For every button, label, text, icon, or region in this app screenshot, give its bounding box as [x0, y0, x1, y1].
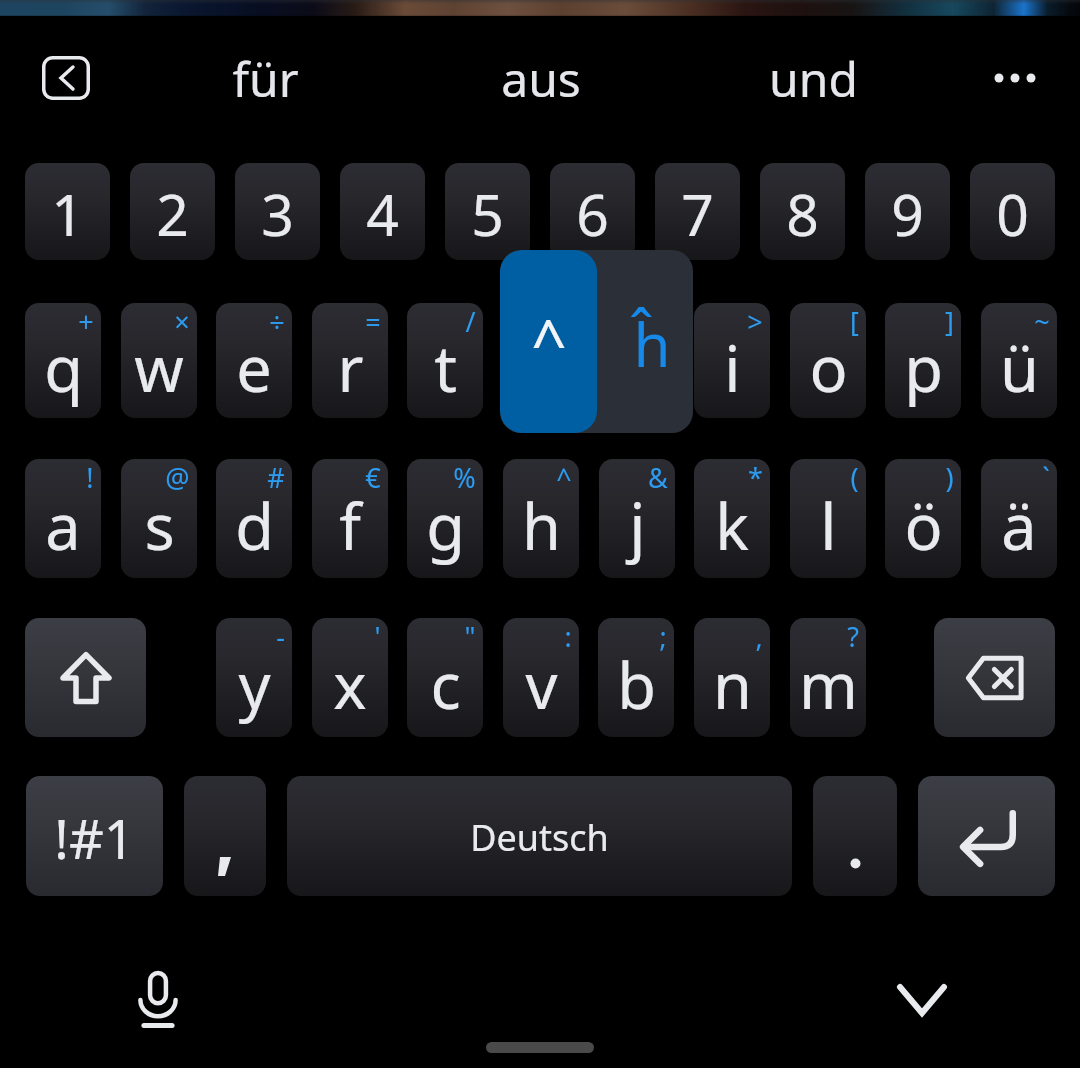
button[interactable]: - [216, 618, 292, 737]
button[interactable]: ( [790, 459, 866, 578]
button[interactable] [813, 776, 897, 896]
staticText: % [453, 459, 476, 496]
button[interactable]: ; [598, 618, 674, 737]
staticText: i [724, 325, 741, 411]
staticText: f [339, 483, 361, 569]
button[interactable]: 2 [130, 163, 215, 260]
button[interactable]: ) [885, 459, 961, 578]
staticText: : [564, 618, 572, 655]
button[interactable]: * [694, 459, 770, 578]
staticText: & [648, 459, 668, 496]
button[interactable]: und [703, 44, 923, 112]
staticText: ) [945, 459, 954, 496]
staticText: 1 [51, 175, 84, 253]
button[interactable]: ÷ [216, 303, 292, 418]
staticText: j [629, 483, 646, 569]
staticText: und [769, 46, 858, 111]
staticText: s [144, 483, 175, 569]
button[interactable]: 1 [25, 163, 110, 260]
button[interactable]: für [155, 44, 375, 112]
button[interactable]: 6 [550, 163, 635, 260]
staticText: l [820, 483, 837, 569]
staticText: 3 [261, 175, 294, 253]
button[interactable]: !#1 [26, 776, 163, 896]
staticText: t [434, 325, 457, 411]
button[interactable]: 4 [340, 163, 425, 260]
button[interactable]: [ [790, 303, 866, 418]
staticText: a [45, 483, 81, 569]
staticText: r [337, 325, 364, 411]
staticText: € [365, 459, 381, 496]
staticText: y [238, 642, 271, 728]
button[interactable]: > [694, 303, 770, 418]
staticText: ü [1000, 325, 1039, 411]
button[interactable]: ` [981, 459, 1057, 578]
button[interactable]: Shift [25, 618, 146, 737]
staticText: ' [374, 618, 381, 655]
button[interactable]: = [312, 303, 388, 418]
button[interactable]: Hide keyboard [882, 960, 962, 1040]
staticText: ^ [531, 299, 567, 383]
button[interactable]: & [599, 459, 675, 578]
button[interactable]: Back [42, 56, 90, 100]
staticText: 0 [996, 175, 1029, 253]
staticText: k [715, 483, 749, 569]
staticText: - [276, 618, 285, 655]
button[interactable]: 0 [970, 163, 1055, 260]
staticText: für [232, 46, 299, 111]
button[interactable]: ? [790, 618, 866, 737]
staticText: [ [850, 303, 859, 340]
staticText: " [464, 618, 476, 655]
button[interactable]: 8 [760, 163, 845, 260]
staticText: 6 [576, 175, 609, 253]
button[interactable]: ] [885, 303, 961, 418]
staticText: n [713, 642, 752, 728]
staticText: 9 [891, 175, 924, 253]
button[interactable]: ^ [500, 250, 597, 433]
button[interactable]: @ [121, 459, 197, 578]
button[interactable]: Deutsch [287, 776, 792, 896]
button[interactable]: Backspace [934, 618, 1055, 737]
button[interactable]: ! [25, 459, 101, 578]
staticText: q [44, 325, 83, 411]
button[interactable]: + [25, 303, 101, 418]
staticText: c [430, 642, 461, 728]
staticText: ö [904, 483, 943, 569]
staticText: !#1 [54, 801, 135, 875]
button[interactable]: € [312, 459, 388, 578]
button[interactable]: Voice input [118, 960, 198, 1040]
button[interactable]: 9 [865, 163, 950, 260]
button[interactable]: ĥ [597, 250, 693, 433]
button[interactable]: / [407, 303, 483, 418]
button[interactable]: 5 [445, 163, 530, 260]
staticText: h [522, 483, 561, 569]
staticText: ` [1042, 459, 1050, 496]
button[interactable]: ^ [503, 459, 579, 578]
button[interactable]: , [694, 618, 770, 737]
staticText: m [799, 642, 858, 728]
staticText: / [465, 303, 476, 340]
staticText: 8 [786, 175, 819, 253]
button[interactable]: ~ [981, 303, 1057, 418]
button[interactable]: aus [431, 44, 651, 112]
staticText: ~ [1034, 303, 1050, 340]
button[interactable]: Enter [918, 776, 1055, 896]
button[interactable]: × [121, 303, 197, 418]
staticText: ÷ [269, 303, 285, 340]
staticText: × [174, 303, 190, 340]
button[interactable]: 3 [235, 163, 320, 260]
button[interactable]: ' [312, 618, 388, 737]
staticText: , [755, 618, 763, 655]
staticText: b [617, 642, 656, 728]
button[interactable] [184, 776, 266, 896]
staticText: ä [1001, 483, 1037, 569]
staticText: ĥ [633, 303, 671, 385]
button[interactable]: 7 [655, 163, 740, 260]
button[interactable]: % [407, 459, 483, 578]
staticText: ^ [556, 459, 572, 496]
button[interactable]: " [407, 618, 483, 737]
button[interactable]: # [216, 459, 292, 578]
button[interactable]: More options [985, 56, 1045, 100]
button[interactable]: : [503, 618, 579, 737]
staticText: aus [501, 46, 581, 111]
